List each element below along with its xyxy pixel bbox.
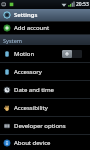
button[interactable]: Motion toggle, off [62, 50, 82, 58]
button[interactable]: Accessibility [0, 99, 90, 116]
button[interactable]: Date and time [0, 81, 90, 98]
staticText: 20:53 [76, 1, 89, 8]
staticText: Settings [14, 11, 38, 19]
staticText: Accessory [14, 68, 42, 76]
button[interactable]: Developer options [0, 117, 90, 134]
staticText: Add account [14, 24, 50, 32]
button[interactable]: About device [0, 135, 90, 150]
button[interactable]: Motion [0, 45, 90, 62]
staticText: Developer options [14, 122, 66, 130]
staticText: Date and time [14, 86, 54, 94]
button[interactable]: Settings [0, 9, 90, 21]
button[interactable]: Accessory [0, 63, 90, 80]
staticText: About device [14, 139, 51, 147]
staticText: Accessibility [14, 104, 48, 112]
staticText: System [3, 37, 23, 44]
staticText: Motion [14, 50, 35, 58]
button[interactable]: Add account [0, 22, 90, 34]
